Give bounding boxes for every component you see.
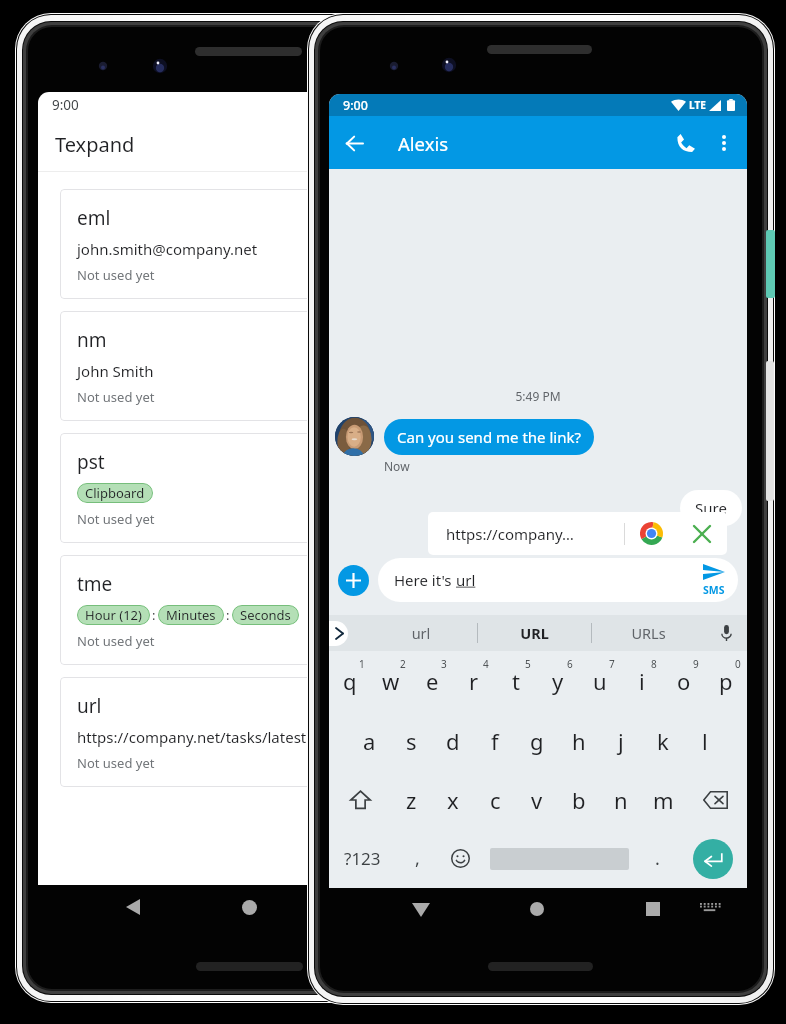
button[interactable]: Add attachment — [338, 565, 369, 596]
button[interactable]: eml — [60, 189, 460, 299]
button[interactable]: Dismiss — [677, 512, 727, 555]
staticText: 3 — [441, 657, 447, 671]
staticText: 2 — [400, 657, 406, 671]
button[interactable]: j — [600, 711, 642, 770]
staticText: Minutes — [166, 606, 216, 624]
staticText: Seconds — [240, 606, 291, 624]
button[interactable]: Hide keyboard — [412, 903, 430, 917]
button[interactable]: Open in Chrome — [625, 512, 677, 555]
staticText: URL — [478, 623, 591, 643]
staticText: SMS — [703, 583, 725, 597]
button[interactable]: w — [370, 651, 411, 711]
button[interactable]: r — [453, 651, 495, 711]
staticText: y — [552, 666, 564, 696]
button[interactable]: e — [411, 651, 453, 711]
staticText: s — [406, 726, 417, 756]
staticText: 7 — [609, 657, 615, 671]
staticText: Not used yet — [77, 632, 155, 650]
staticText: Sure — [695, 498, 727, 518]
staticText: j — [618, 726, 624, 756]
staticText: Alexis — [398, 131, 449, 156]
button[interactable]: Backspace — [684, 770, 747, 829]
staticText: https://company… — [446, 524, 624, 544]
button[interactable]: Home — [530, 902, 544, 916]
staticText: Hour (12) — [85, 606, 142, 624]
staticText: v — [531, 785, 543, 815]
button[interactable]: t — [495, 651, 537, 711]
staticText: w — [382, 666, 400, 696]
button[interactable]: k — [642, 711, 684, 770]
staticText: eml — [77, 205, 111, 231]
button[interactable]: p — [705, 651, 747, 711]
staticText: t — [512, 666, 520, 696]
button[interactable]: url — [60, 677, 460, 787]
button[interactable]: h — [558, 711, 600, 770]
staticText: u — [593, 666, 607, 696]
staticText: i — [639, 666, 645, 696]
button[interactable]: b — [558, 770, 600, 829]
button[interactable]: g — [516, 711, 558, 770]
staticText: h — [572, 726, 586, 756]
staticText: Not used yet — [77, 754, 155, 772]
staticText: e — [426, 666, 439, 696]
staticText: ?123 — [344, 847, 381, 870]
button[interactable]: . — [636, 829, 679, 888]
button[interactable]: Back — [337, 126, 371, 160]
staticText: Can you send me the link? — [397, 427, 581, 447]
button[interactable]: pst — [60, 433, 460, 543]
staticText: pst — [77, 449, 105, 475]
staticText: 9 — [693, 657, 699, 671]
button[interactable]: a — [349, 711, 390, 770]
button[interactable]: Home — [242, 900, 257, 915]
button[interactable]: Expand toolbar — [329, 621, 348, 646]
button[interactable]: Voice input — [705, 615, 747, 651]
staticText: LTE — [689, 98, 706, 112]
button[interactable]: d — [432, 711, 474, 770]
button[interactable]: z — [391, 770, 432, 829]
button[interactable]: , — [396, 829, 439, 888]
button[interactable]: nm — [60, 311, 460, 421]
button[interactable]: More options — [706, 125, 742, 161]
button[interactable]: https://company… — [428, 512, 727, 555]
staticText: url — [77, 693, 102, 719]
button[interactable]: x — [432, 770, 474, 829]
staticText: 5 — [525, 657, 531, 671]
staticText: : — [152, 606, 156, 624]
button[interactable]: v — [516, 770, 558, 829]
button[interactable]: Here it's — [378, 558, 738, 602]
button[interactable]: l — [684, 711, 726, 770]
staticText: tme — [77, 571, 113, 597]
button[interactable]: Enter — [679, 829, 747, 888]
button[interactable]: u — [579, 651, 621, 711]
button[interactable]: Emoji — [439, 829, 482, 888]
staticText: url — [456, 570, 476, 590]
staticText: a — [363, 726, 376, 756]
button[interactable]: Call — [666, 123, 706, 163]
button[interactable]: Shift — [329, 770, 391, 829]
staticText: Clipboard — [85, 484, 145, 502]
button[interactable]: f — [474, 711, 516, 770]
button[interactable]: Switch keyboard — [700, 903, 721, 915]
button[interactable]: s — [390, 711, 432, 770]
staticText: 9:00 — [343, 97, 368, 114]
staticText: john.smith@company.net — [77, 239, 258, 259]
button[interactable]: Back — [126, 899, 140, 915]
button[interactable]: Space — [482, 829, 636, 888]
staticText: r — [469, 666, 479, 696]
button[interactable]: c — [474, 770, 516, 829]
button[interactable]: i — [621, 651, 663, 711]
button[interactable]: n — [600, 770, 642, 829]
button[interactable]: y — [537, 651, 579, 711]
button[interactable]: q — [329, 651, 370, 711]
staticText: f — [491, 726, 499, 756]
staticText: URLs — [592, 623, 705, 643]
button[interactable]: tme — [60, 555, 460, 665]
button[interactable]: o — [663, 651, 705, 711]
staticText: Not used yet — [77, 266, 155, 284]
staticText: k — [657, 726, 669, 756]
button[interactable]: ?123 — [329, 829, 396, 888]
staticText: Not used yet — [77, 388, 155, 406]
button[interactable]: m — [642, 770, 684, 829]
